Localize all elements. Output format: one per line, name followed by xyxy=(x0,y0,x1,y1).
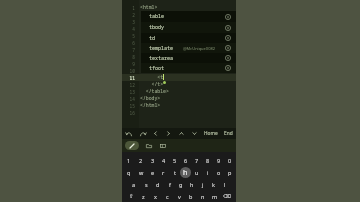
button[interactable]: table xyxy=(141,11,236,22)
button[interactable]: textarea xyxy=(141,53,236,63)
staticText: h xyxy=(190,181,194,188)
button[interactable]: 6 xyxy=(180,154,191,166)
staticText: td xyxy=(149,35,156,42)
button[interactable]: Move up xyxy=(175,128,188,139)
staticText: 14 xyxy=(122,96,135,102)
button[interactable]: ⌫ xyxy=(221,190,233,202)
button[interactable]: Open folder xyxy=(144,141,154,151)
staticText: @Mr.Unique0082 xyxy=(183,46,215,51)
button[interactable]: c xyxy=(161,190,173,202)
button[interactable]: o xyxy=(213,166,224,178)
button[interactable]: 5 xyxy=(169,154,180,166)
staticText: c xyxy=(166,193,169,200)
button[interactable]: Edit xyxy=(125,141,139,150)
other: Info about td xyxy=(225,35,231,41)
staticText: 9 xyxy=(122,61,135,67)
other: Info about tfoot xyxy=(225,65,231,71)
staticText: h xyxy=(183,168,188,178)
staticText: 5 xyxy=(173,157,177,164)
staticText: q xyxy=(127,169,131,176)
button[interactable]: u xyxy=(191,166,202,178)
button[interactable]: Redo xyxy=(136,128,149,139)
staticText: <t xyxy=(140,74,164,81)
button[interactable]: m xyxy=(209,190,221,202)
staticText: n xyxy=(201,193,205,200)
button[interactable]: j xyxy=(197,178,208,190)
staticText: ⌫ xyxy=(223,193,231,199)
staticText: 7 xyxy=(122,47,135,53)
button[interactable]: n xyxy=(197,190,209,202)
button[interactable]: x xyxy=(149,190,161,202)
button[interactable]: p xyxy=(224,166,235,178)
button[interactable]: Insert media xyxy=(158,141,168,151)
staticText: 13 xyxy=(122,89,135,95)
button[interactable]: f xyxy=(164,178,175,190)
button[interactable]: template xyxy=(141,43,236,53)
staticText: tbody xyxy=(149,24,165,31)
button[interactable]: Undo xyxy=(122,128,136,139)
staticText: 6 xyxy=(184,157,188,164)
staticText: 8 xyxy=(206,157,210,164)
button[interactable]: r xyxy=(158,166,169,178)
staticText: 15 xyxy=(122,103,135,109)
staticText: 10 xyxy=(122,68,135,74)
button[interactable]: t xyxy=(169,166,180,178)
button[interactable]: z xyxy=(137,190,149,202)
staticText: <table> xyxy=(140,11,166,18)
staticText: tfoot xyxy=(149,65,165,72)
button[interactable]: Move down xyxy=(188,128,201,139)
staticText: u xyxy=(195,169,199,176)
staticText: 1 xyxy=(122,5,135,11)
other: Info about table xyxy=(225,14,231,20)
button[interactable]: 3 xyxy=(147,154,158,166)
other: Info about textarea xyxy=(225,55,231,61)
button[interactable]: q xyxy=(123,166,135,178)
button[interactable]: k xyxy=(208,178,219,190)
staticText: 12 xyxy=(122,82,135,88)
button[interactable]: Move left xyxy=(149,128,162,139)
other: Info about template xyxy=(225,45,231,51)
button[interactable]: d xyxy=(152,178,164,190)
button[interactable]: End xyxy=(221,128,236,139)
button[interactable]: a xyxy=(128,178,140,190)
staticText: Home xyxy=(204,130,218,137)
button[interactable]: 4 xyxy=(158,154,169,166)
staticText: 4 xyxy=(122,26,135,32)
staticText: j xyxy=(202,181,204,188)
button[interactable]: h xyxy=(186,178,197,190)
button[interactable]: Move right xyxy=(162,128,175,139)
button[interactable]: v xyxy=(173,190,185,202)
button[interactable]: ⇧ xyxy=(125,190,137,202)
button[interactable]: h xyxy=(180,166,191,178)
button[interactable]: 8 xyxy=(202,154,213,166)
button[interactable]: tfoot xyxy=(141,63,236,73)
button[interactable]: 1 xyxy=(123,154,135,166)
button[interactable]: l xyxy=(219,178,230,190)
staticText: textarea xyxy=(149,55,174,62)
staticText: </t> xyxy=(140,81,164,88)
button[interactable]: e xyxy=(147,166,158,178)
staticText: w xyxy=(139,169,144,176)
button[interactable]: i xyxy=(202,166,213,178)
button[interactable]: 7 xyxy=(191,154,202,166)
staticText: table xyxy=(149,13,165,20)
staticText: v xyxy=(178,193,181,200)
staticText: ⇧ xyxy=(129,193,134,199)
staticText: 0 xyxy=(228,157,232,164)
button[interactable]: tbody xyxy=(141,22,236,33)
button[interactable]: s xyxy=(140,178,152,190)
staticText: 8 xyxy=(122,54,135,60)
button[interactable]: 9 xyxy=(213,154,224,166)
button[interactable]: g xyxy=(175,178,186,190)
staticText: 2 xyxy=(122,12,135,18)
other: Info about tbody xyxy=(225,25,231,31)
button[interactable]: 2 xyxy=(135,154,147,166)
staticText: x xyxy=(154,193,157,200)
button[interactable]: w xyxy=(135,166,147,178)
button[interactable]: td xyxy=(141,33,236,43)
staticText: e xyxy=(151,169,155,176)
button[interactable]: b xyxy=(185,190,197,202)
button[interactable]: Home xyxy=(201,128,221,139)
button[interactable]: 0 xyxy=(224,154,235,166)
staticText: t xyxy=(174,169,176,176)
